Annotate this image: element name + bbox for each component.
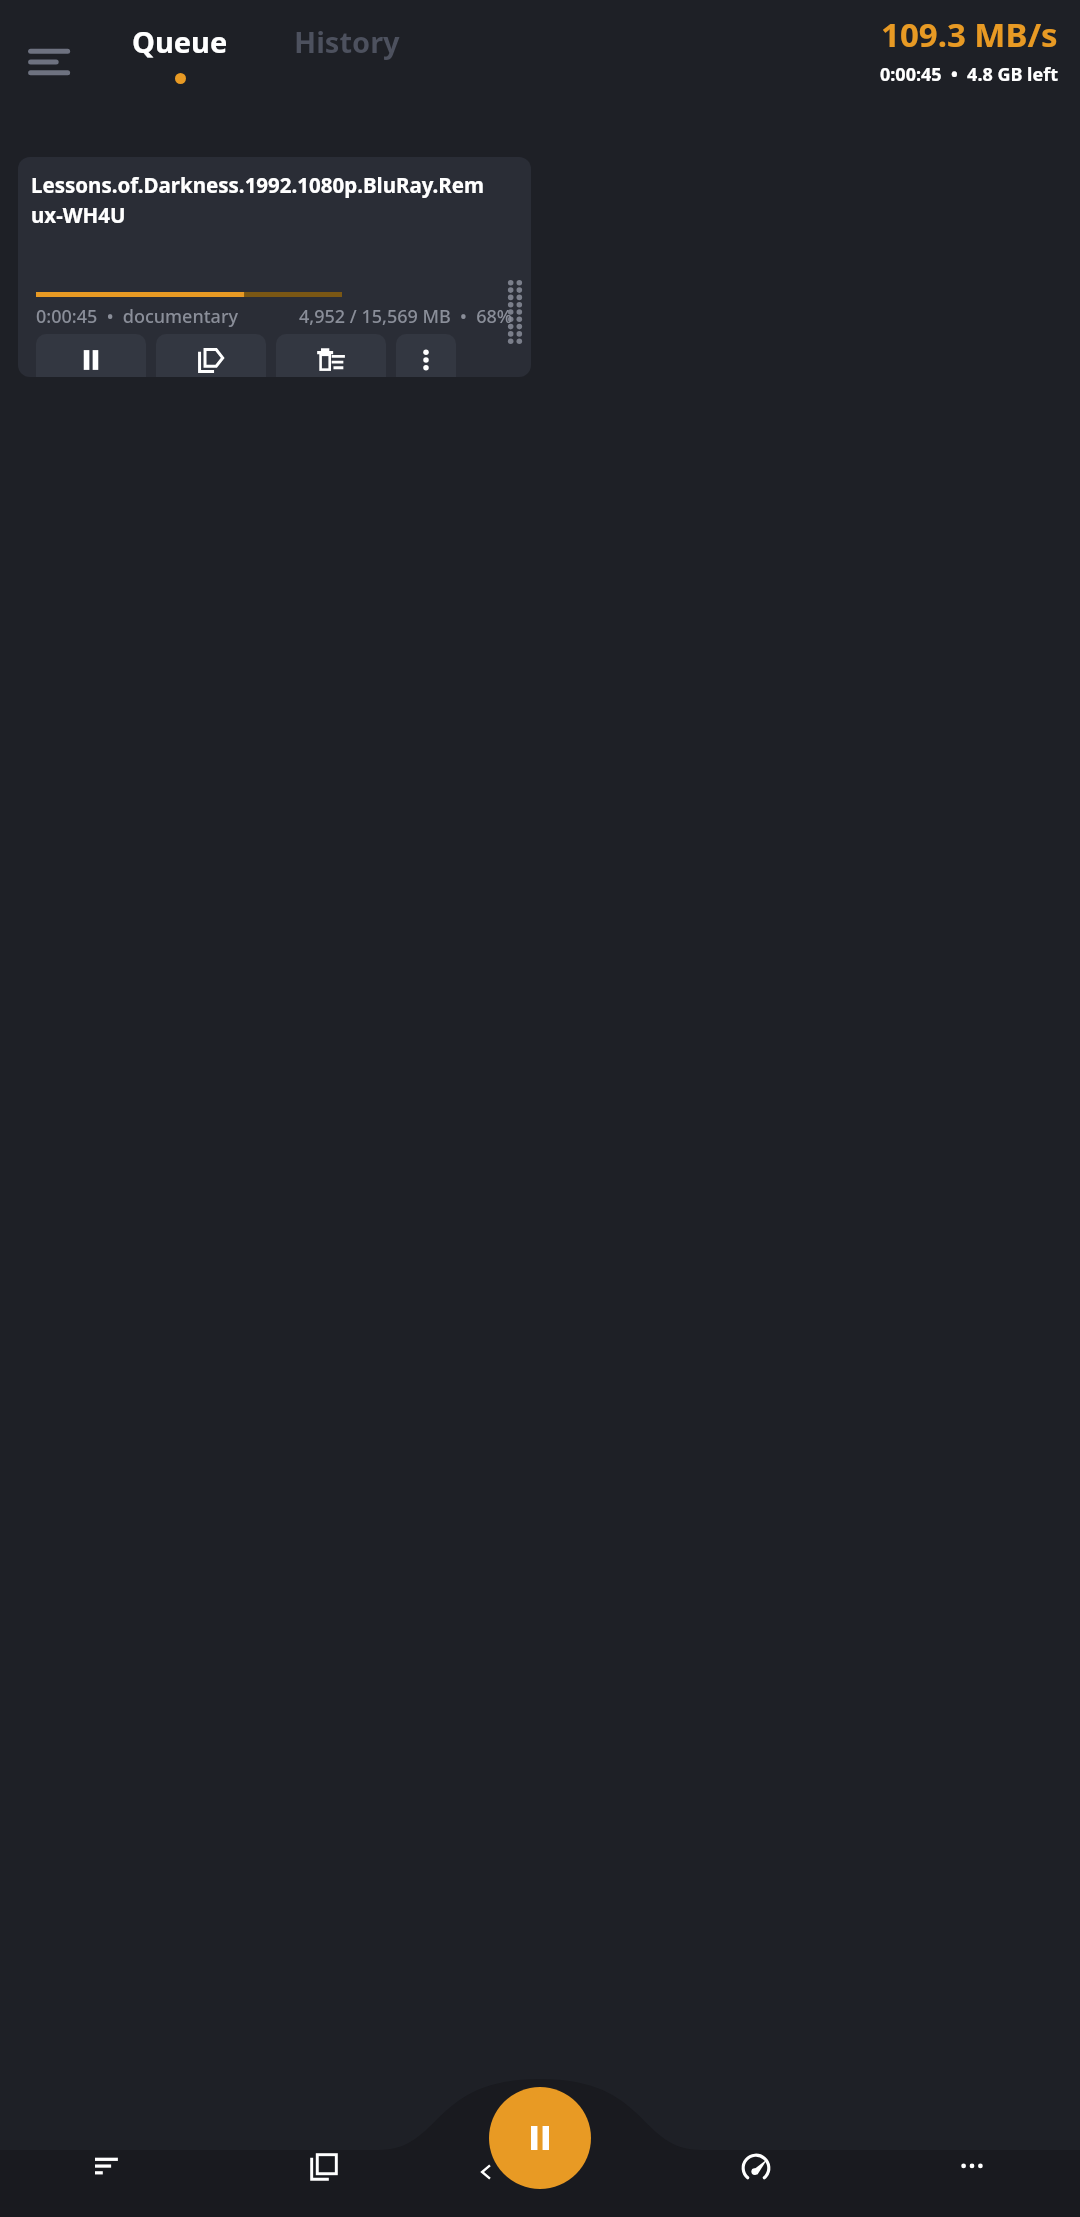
button[interactable]: Action [36,334,146,377]
button[interactable]: Action [276,334,386,377]
button[interactable]: Sort [0,2149,216,2217]
staticText: 0:00:45 • documentary [36,304,239,329]
button[interactable]: History [282,14,412,69]
button[interactable]: Action [156,334,266,377]
staticText: Lessons.of.Darkness.1992.1080p.BluRay.Re… [31,171,491,229]
button[interactable]: Pause all [489,2087,591,2189]
button[interactable]: Collapse [471,2157,501,2187]
button[interactable]: More [864,2149,1080,2217]
button[interactable]: Tasks [216,2149,432,2217]
button[interactable]: Queue [120,14,240,92]
staticText: 109.3 MB/s [881,12,1058,57]
button[interactable]: Reorder [503,277,527,347]
button[interactable]: Lessons.of.Darkness.1992.1080p.BluRay.Re… [18,157,531,377]
staticText: 4,952 / 15,569 MB • 68% [299,304,513,329]
button[interactable]: Menu [14,26,86,98]
staticText: Queue [132,22,228,61]
button[interactable]: Action [396,334,456,377]
staticText: 0:00:45 • 4.8 GB left [880,62,1058,87]
staticText: History [294,22,400,61]
button[interactable]: Speed [648,2149,864,2217]
